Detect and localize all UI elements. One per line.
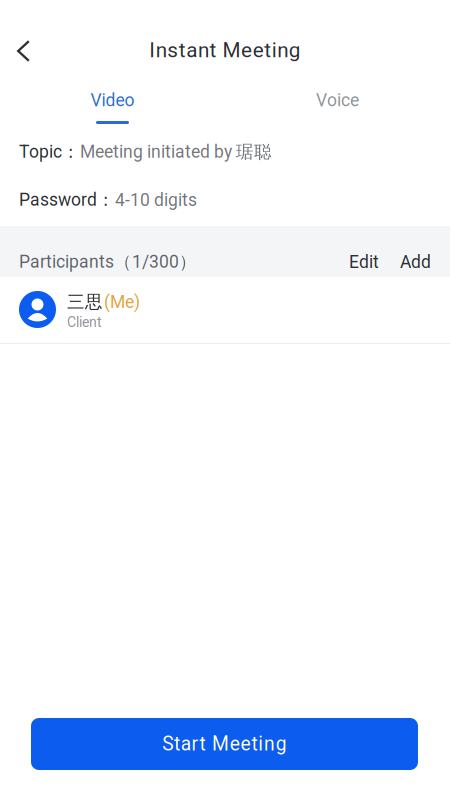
button[interactable]: Voice	[225, 90, 450, 141]
staticText: (Me)	[104, 292, 140, 312]
button[interactable]: Edit	[342, 252, 386, 272]
staticText: Edit	[349, 252, 379, 272]
button[interactable]: Add	[386, 252, 431, 272]
staticText: Topic：	[19, 141, 80, 163]
button[interactable]: Start Meeting	[31, 718, 418, 770]
staticText: Client	[67, 314, 102, 330]
staticText: Start Meeting	[162, 733, 287, 755]
staticText: Voice	[316, 90, 359, 110]
staticText: Meeting initiated by 琚聪	[80, 141, 272, 163]
button[interactable]: 三思	[0, 277, 450, 343]
staticText: Instant Meeting	[149, 38, 301, 62]
staticText: 4-10 digits	[115, 190, 197, 210]
staticText: Password：	[19, 189, 115, 211]
staticText: 三思	[67, 291, 103, 313]
button[interactable]: Video	[0, 90, 225, 141]
staticText: Video	[90, 90, 134, 110]
button[interactable]: Back	[0, 0, 46, 74]
staticText: Participants（1/300）	[19, 251, 197, 273]
staticText: Add	[400, 252, 431, 272]
